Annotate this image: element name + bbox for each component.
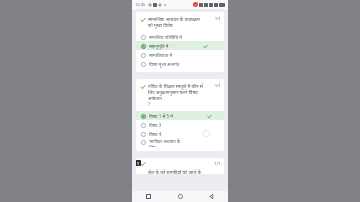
staticText: विषय 4 xyxy=(149,131,162,137)
staticText: विषय 1 से 5 में xyxy=(149,113,173,119)
button[interactable]: सामाजिकता में xyxy=(136,50,224,59)
staticText: 1 xyxy=(137,161,140,166)
button[interactable]: भागीदार अध्ययन के लिए xyxy=(136,138,224,147)
button[interactable]: विषय 4 xyxy=(136,129,224,138)
staticText: सामाजिक अध्ययन के पाठ्यक्रम xyxy=(148,16,200,22)
staticText: लिए अनुक्रमानुसार करने विषय आंकलन xyxy=(148,89,212,101)
staticText: को मुख्य विशेष xyxy=(148,22,173,28)
button[interactable]: विषय मूल्य अन्तर्गत xyxy=(136,59,224,68)
staticText: 1/1 xyxy=(214,161,221,167)
button[interactable]: विषय 3 xyxy=(136,120,224,129)
staticText: 1/1 xyxy=(214,83,221,89)
staticText: सेल के घने सामग्रियों को पहले के xyxy=(148,169,202,174)
staticText: 12:45 xyxy=(135,2,146,7)
staticText: भागीदार अध्ययन के लिए xyxy=(149,138,185,147)
button[interactable]: Back xyxy=(207,192,216,201)
staticText: सहानुभूति में xyxy=(149,43,169,49)
staticText: विषय 3 xyxy=(149,122,162,128)
button[interactable]: सहानुभूति में xyxy=(136,41,224,50)
button[interactable]: समाजिक गतिविधि में xyxy=(136,32,224,41)
staticText: समाजिक गतिविधि में xyxy=(149,34,182,40)
staticText: गणित के शिक्षण सम्पूर्ण में कौन से xyxy=(148,83,203,89)
staticText: सामाजिकता में xyxy=(149,52,173,58)
staticText: 1/1 xyxy=(214,16,221,22)
button[interactable]: गणित के शिक्षण सम्पूर्ण में कौन से xyxy=(136,79,224,151)
button[interactable]: 1/1 xyxy=(136,158,224,174)
button[interactable]: सामाजिक अध्ययन के पाठ्यक्रम xyxy=(136,12,224,72)
button[interactable]: Recent apps xyxy=(144,192,153,201)
staticText: विषय मूल्य अन्तर्गत xyxy=(149,61,180,67)
button[interactable]: Home xyxy=(176,192,185,201)
button[interactable]: विषय 1 से 5 में xyxy=(136,111,224,120)
other: Question badge xyxy=(136,160,141,166)
staticText: ? xyxy=(148,101,150,107)
